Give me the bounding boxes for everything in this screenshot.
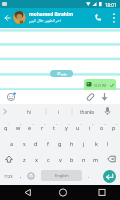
button[interactable]: English <box>41 170 82 181</box>
button[interactable]: b <box>66 151 78 167</box>
staticText: p <box>112 124 116 131</box>
staticText: m <box>93 156 99 163</box>
button[interactable]: x <box>30 151 42 167</box>
button[interactable]: p <box>108 119 120 135</box>
staticText: 3 <box>32 122 34 125</box>
staticText: k <box>95 140 98 147</box>
button[interactable] <box>103 170 116 183</box>
button[interactable]: g <box>54 135 66 151</box>
staticText: r <box>41 124 44 131</box>
button[interactable] <box>91 185 111 200</box>
staticText: o <box>100 124 104 131</box>
staticText: i <box>89 124 91 131</box>
staticText: . <box>88 173 90 180</box>
staticText: 10:01 PM <box>94 84 107 88</box>
staticText: 4 <box>44 122 46 125</box>
staticText: 0 <box>116 122 118 125</box>
staticText: l <box>107 140 109 147</box>
staticText: i <box>58 109 60 115</box>
button[interactable]: r <box>36 119 48 135</box>
staticText: mohamed ibrahim <box>29 11 74 18</box>
staticText: q <box>4 124 8 131</box>
staticText: h <box>70 140 74 147</box>
staticText: v <box>59 156 62 163</box>
staticText: u <box>76 124 80 131</box>
staticText: n <box>82 156 86 163</box>
staticText: e <box>28 124 32 131</box>
button[interactable]: s <box>18 135 30 151</box>
staticText: آخر الظهور خلال اليوم <box>29 18 61 23</box>
button[interactable]: n <box>78 151 90 167</box>
staticText: f <box>47 140 49 147</box>
button[interactable]: c <box>42 151 54 167</box>
button[interactable] <box>0 8 13 28</box>
button[interactable]: u <box>72 119 84 135</box>
button[interactable]: . <box>84 167 93 185</box>
staticText: hi <box>27 109 31 115</box>
staticText: t <box>53 124 55 131</box>
button[interactable]: hi <box>12 104 46 119</box>
button[interactable] <box>24 167 38 185</box>
staticText: d <box>34 140 38 147</box>
button[interactable]: y <box>60 119 72 135</box>
button[interactable] <box>102 151 120 167</box>
staticText: 18:01 <box>105 2 117 8</box>
button[interactable]: , <box>17 167 25 185</box>
button[interactable]: d <box>30 135 42 151</box>
staticText: 6 <box>68 122 70 125</box>
button[interactable]: e <box>24 119 36 135</box>
button[interactable] <box>91 8 105 28</box>
button[interactable]: thanks <box>72 104 102 119</box>
button[interactable]: v <box>54 151 66 167</box>
staticText: 7 <box>80 122 82 125</box>
button[interactable]: 10:01 PM <box>84 79 116 91</box>
button[interactable] <box>108 8 120 28</box>
staticText: w <box>16 124 21 131</box>
staticText: y <box>65 124 68 131</box>
staticText: English <box>55 173 69 178</box>
button[interactable] <box>0 151 18 167</box>
staticText: 1 <box>8 122 10 125</box>
button[interactable]: i <box>84 119 96 135</box>
button[interactable]: q <box>0 119 12 135</box>
button[interactable]: ?123 <box>0 167 17 185</box>
button[interactable]: h <box>66 135 78 151</box>
button[interactable]: a <box>6 135 18 151</box>
staticText: 8 <box>92 122 94 125</box>
button[interactable] <box>98 90 111 104</box>
staticText: x <box>35 156 38 163</box>
button[interactable] <box>53 185 73 200</box>
button[interactable]: m <box>90 151 102 167</box>
staticText: , <box>20 173 22 180</box>
button[interactable] <box>18 185 38 200</box>
button[interactable]: t <box>48 119 60 135</box>
button[interactable] <box>4 90 18 104</box>
staticText: b <box>70 156 74 163</box>
button[interactable]: mohamed ibrahim <box>29 11 74 23</box>
button[interactable] <box>13 11 26 24</box>
button[interactable]: k <box>90 135 102 151</box>
staticText: ?123 <box>4 174 13 179</box>
staticText: j <box>83 140 85 147</box>
staticText: 5 <box>56 122 58 125</box>
staticText: 2 <box>20 122 22 125</box>
button[interactable]: w <box>12 119 24 135</box>
staticText: g <box>58 140 62 147</box>
button[interactable]: j <box>78 135 90 151</box>
staticText: 9 <box>104 122 106 125</box>
button[interactable]: f <box>42 135 54 151</box>
button[interactable]: o <box>96 119 108 135</box>
staticText: c <box>47 156 50 163</box>
staticText: 23 يوليو <box>57 72 67 76</box>
button[interactable]: i <box>46 104 72 119</box>
staticText: thanks <box>80 109 95 115</box>
button[interactable]: z <box>18 151 30 167</box>
staticText: a <box>10 140 14 147</box>
button[interactable]: l <box>102 135 114 151</box>
staticText: z <box>23 156 26 163</box>
button[interactable] <box>84 90 97 104</box>
staticText: s <box>23 140 26 147</box>
